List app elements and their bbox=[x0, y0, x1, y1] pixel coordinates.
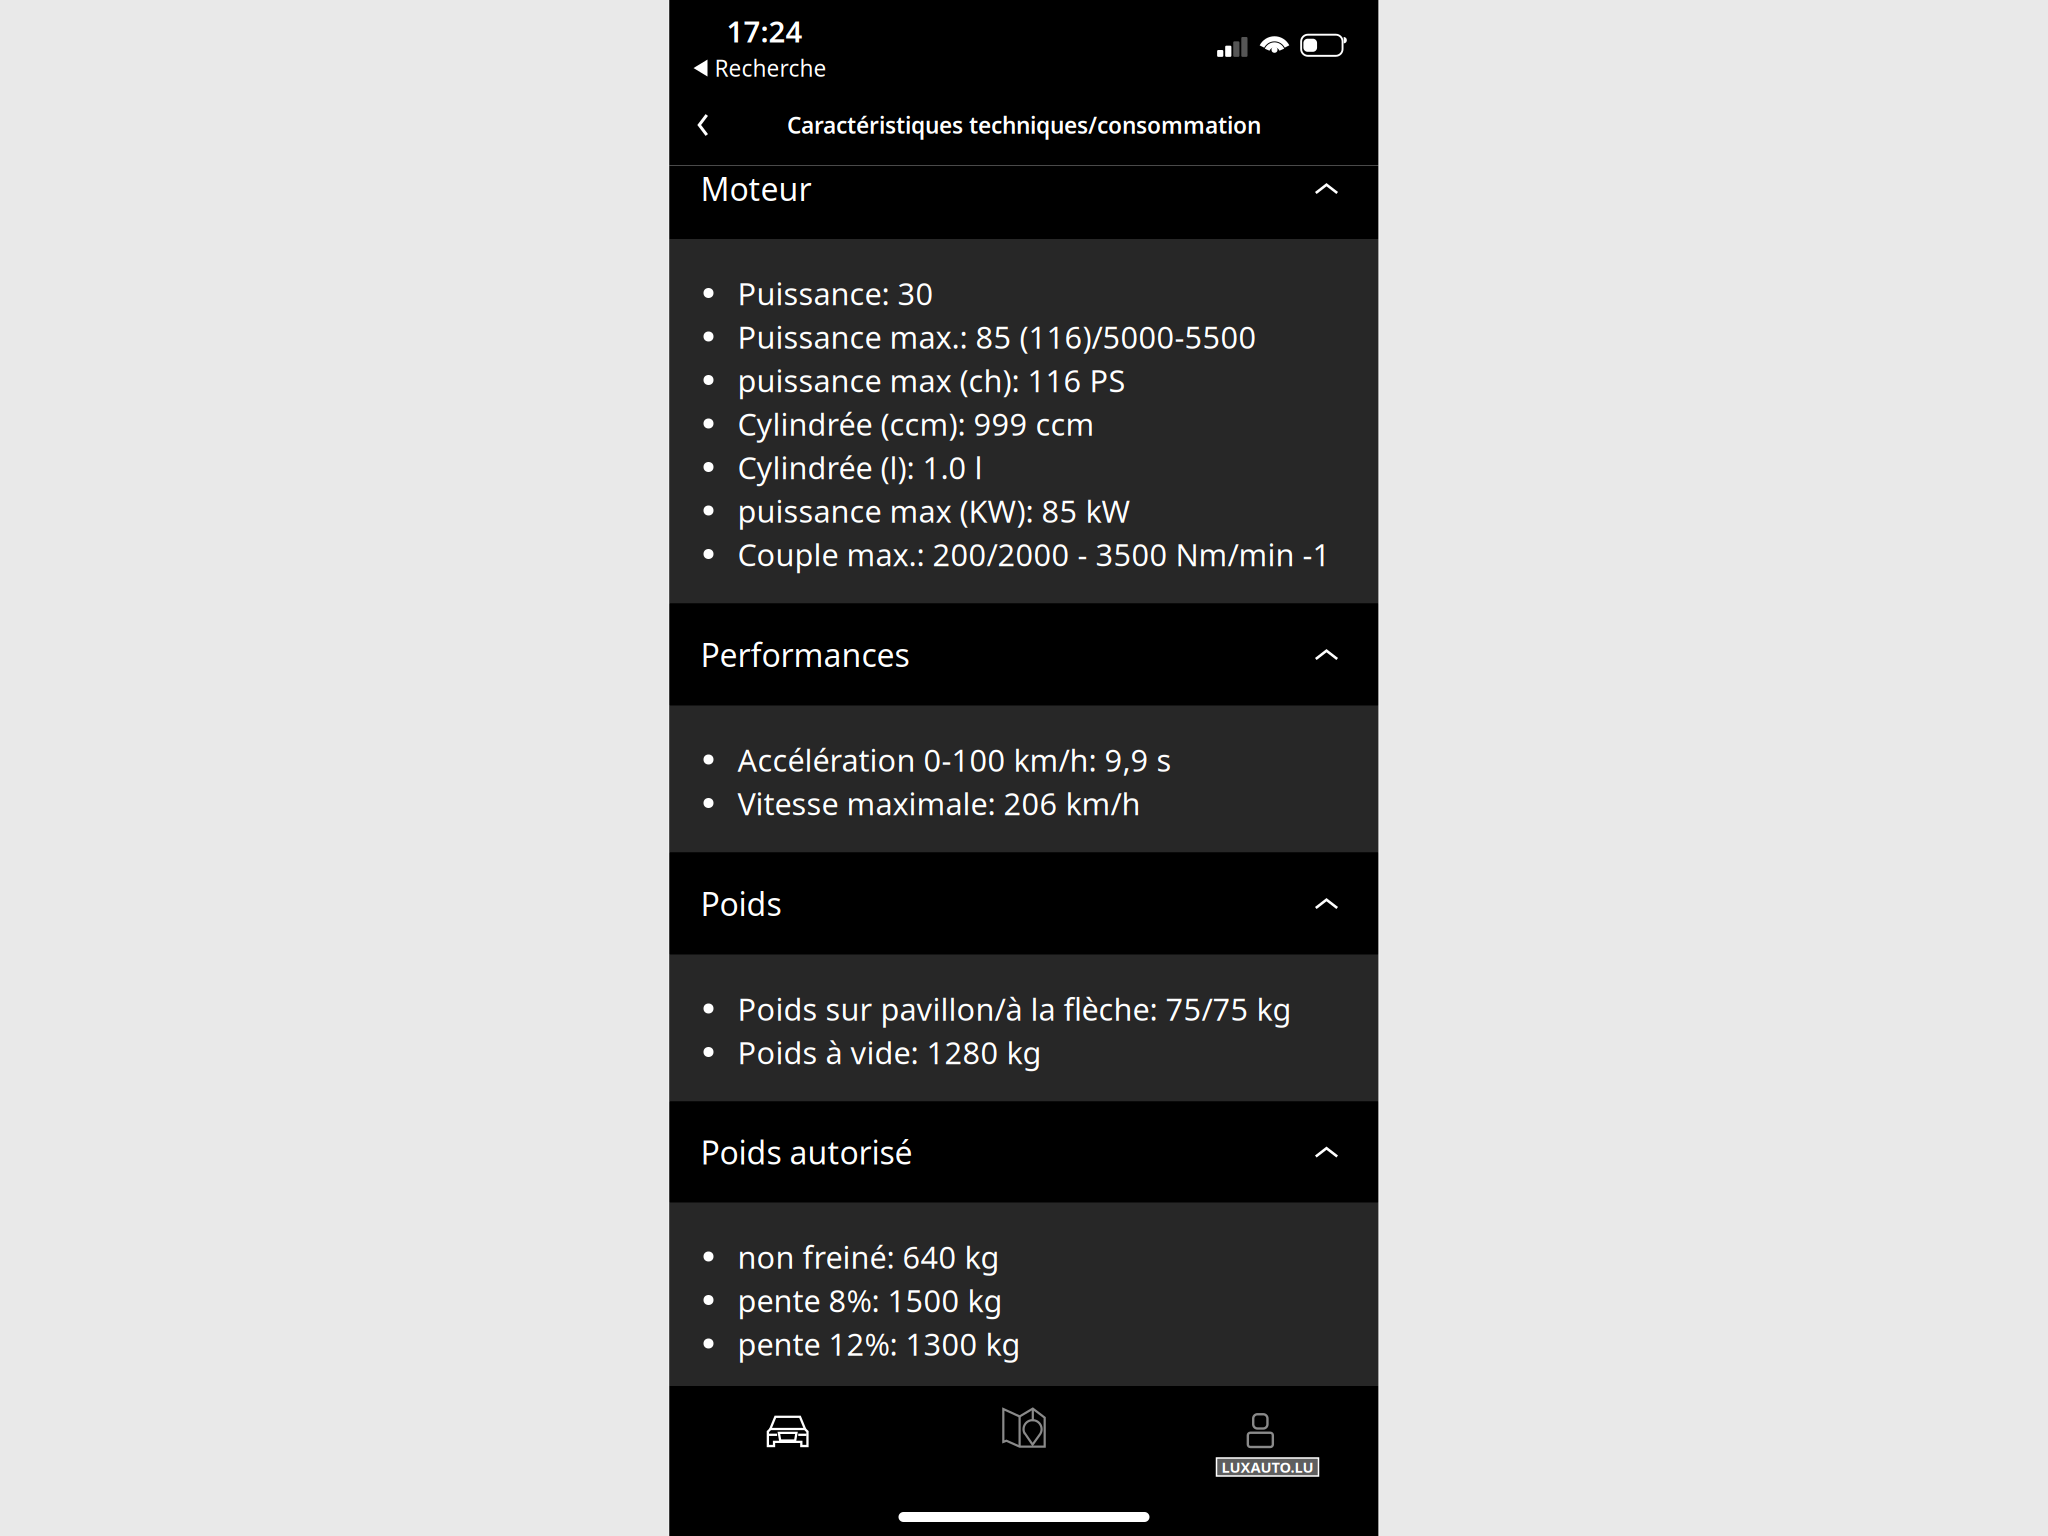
staticText: Puissance: 30 bbox=[737, 273, 933, 314]
staticText: Poids bbox=[700, 882, 781, 925]
staticText: Cylindrée (ccm): 999 ccm bbox=[737, 403, 1094, 444]
staticText: Puissance max.: 85 (116)/5000-5500 bbox=[737, 316, 1256, 357]
staticText: puissance max (KW): 85 kW bbox=[737, 490, 1130, 531]
staticText: pente 8%: 1500 kg bbox=[737, 1280, 1002, 1321]
button[interactable]: Moteur bbox=[669, 166, 1378, 239]
button[interactable]: Carte bbox=[906, 1372, 1142, 1447]
button[interactable]: Profil bbox=[1142, 1372, 1378, 1447]
staticText: Caractéristiques techniques/consommation bbox=[787, 110, 1261, 140]
staticText: Accélération 0-100 km/h: 9,9 s bbox=[737, 739, 1171, 780]
button[interactable]: Performances bbox=[669, 603, 1378, 705]
button[interactable]: Retour bbox=[669, 97, 736, 153]
staticText: Poids sur pavillon/à la flèche: 75/75 kg bbox=[737, 988, 1291, 1029]
staticText: Couple max.: 200/2000 - 3500 Nm/min -1 bbox=[737, 534, 1330, 575]
staticText: LUXAUTO.LU bbox=[1221, 1457, 1313, 1477]
staticText: Vitesse maximale: 206 km/h bbox=[737, 783, 1140, 824]
staticText: non freiné: 640 kg bbox=[737, 1236, 999, 1277]
staticText: Performances bbox=[700, 633, 909, 676]
staticText: puissance max (ch): 116 PS bbox=[737, 360, 1125, 401]
button[interactable]: Poids bbox=[669, 852, 1378, 954]
staticText: Poids à vide: 1280 kg bbox=[737, 1032, 1041, 1073]
staticText: Moteur bbox=[700, 167, 811, 210]
button[interactable]: Poids autorisé bbox=[669, 1101, 1378, 1202]
staticText: Cylindrée (l): 1.0 l bbox=[737, 447, 982, 488]
staticText: 17:24 bbox=[726, 11, 802, 50]
staticText: pente 12%: 1300 kg bbox=[737, 1323, 1020, 1364]
button[interactable]: Recherche bbox=[669, 53, 826, 91]
staticText: Poids autorisé bbox=[700, 1131, 912, 1173]
button[interactable]: Véhicules bbox=[669, 1372, 906, 1447]
staticText: Recherche bbox=[714, 53, 826, 83]
